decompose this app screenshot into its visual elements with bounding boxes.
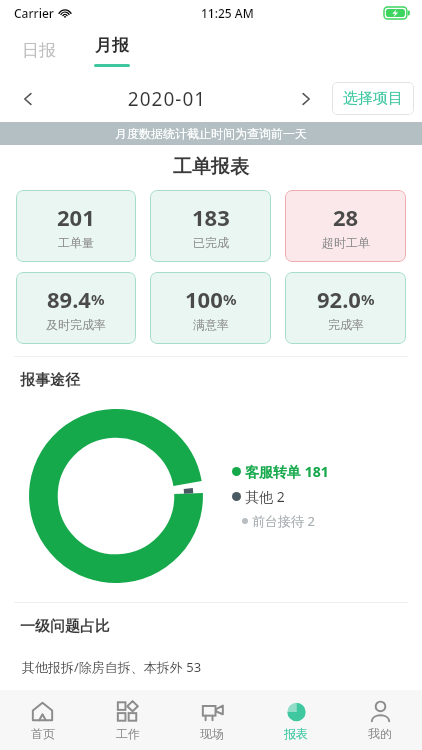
button[interactable]: 我的: [338, 690, 422, 750]
staticText: 首页: [31, 726, 55, 741]
button[interactable]: 92.0: [285, 272, 406, 344]
staticText: 工作: [116, 726, 140, 741]
button[interactable]: 201: [16, 190, 136, 262]
staticText: 183: [192, 202, 230, 232]
staticText: 工单量: [58, 235, 94, 250]
staticText: 现场: [200, 726, 224, 741]
button[interactable]: 报表: [254, 690, 338, 750]
staticText: 其他 2: [245, 487, 285, 506]
button[interactable]: 89.4: [16, 272, 136, 344]
staticText: 工单报表: [0, 155, 422, 179]
staticText: 月报: [95, 35, 129, 56]
staticText: 201: [57, 202, 95, 232]
button[interactable]: 28: [285, 190, 406, 262]
staticText: 11:25 AM: [201, 5, 254, 21]
staticText: 选择项目: [343, 89, 403, 108]
staticText: 报表: [284, 726, 308, 741]
staticText: %: [91, 289, 105, 309]
staticText: 其他报拆/除房自拆、本拆外 53: [22, 658, 202, 676]
button[interactable]: 首页: [0, 690, 85, 750]
staticText: %: [223, 289, 237, 309]
staticText: 月度数据统计截止时间为查询前一天: [115, 126, 307, 141]
staticText: 日报: [22, 40, 56, 61]
button[interactable]: 月报: [94, 35, 130, 67]
staticText: 前台接待 2: [252, 512, 315, 530]
button[interactable]: 100: [150, 272, 271, 344]
button[interactable]: 工作: [85, 690, 170, 750]
button[interactable]: Next month: [286, 79, 326, 119]
staticText: 2020-01: [48, 86, 286, 112]
button[interactable]: 日报: [22, 40, 56, 61]
button[interactable]: 选择项目: [332, 82, 414, 115]
staticText: 28: [333, 202, 359, 232]
button[interactable]: 现场: [170, 690, 254, 750]
staticText: 完成率: [328, 317, 364, 332]
staticText: 100: [185, 284, 223, 314]
staticText: 超时工单: [322, 235, 370, 250]
staticText: 89.4: [47, 284, 91, 314]
button[interactable]: Previous month: [8, 79, 48, 119]
staticText: 我的: [368, 726, 392, 741]
staticText: %: [361, 289, 375, 309]
button[interactable]: 183: [150, 190, 271, 262]
staticText: 满意率: [193, 317, 229, 332]
staticText: 客服转单 181: [245, 462, 329, 481]
staticText: 已完成: [193, 235, 229, 250]
staticText: 报事途径: [20, 371, 80, 390]
staticText: 及时完成率: [46, 317, 106, 332]
staticText: 一级问题占比: [20, 617, 110, 636]
staticText: Carrier: [14, 5, 54, 21]
staticText: 92.0: [317, 284, 361, 314]
